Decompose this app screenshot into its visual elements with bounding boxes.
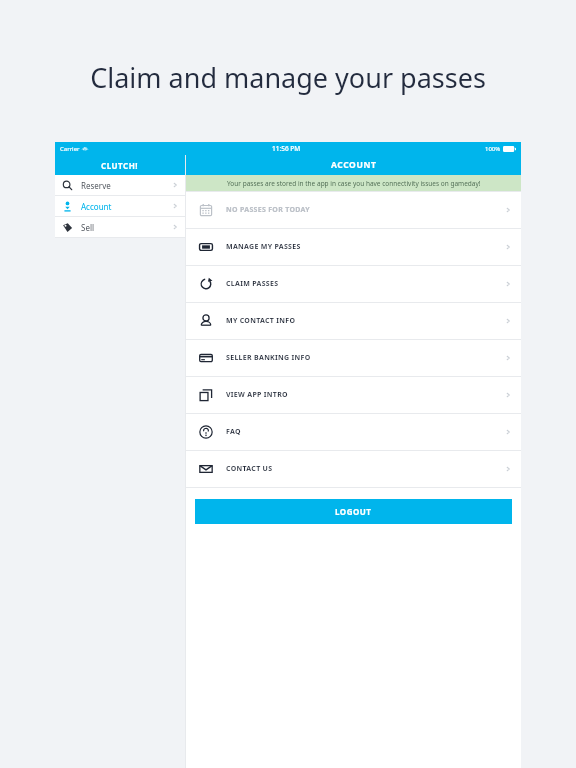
staticText: VIEW APP INTRO [226,390,288,400]
staticText: LOGOUT [335,506,372,517]
button[interactable]: FAQ [186,414,521,450]
staticText: Carrier [60,145,80,153]
other: Open [504,354,512,362]
other: Open [171,202,179,210]
staticText: FAQ [226,427,241,437]
other: Open [504,465,512,473]
other: Open [171,181,179,189]
button[interactable]: CLUTCH! [55,155,185,175]
staticText: SELLER BANKING INFO [226,353,311,363]
button[interactable]: VIEW APP INTRO [186,377,521,413]
other: Open [504,391,512,399]
staticText: Sell [81,222,95,233]
other: Open [504,317,512,325]
staticText: ACCOUNT [331,159,377,171]
button[interactable]: LOGOUT [195,499,512,524]
staticText: NO PASSES FOR TODAY [226,205,310,215]
button[interactable]: CONTACT US [186,451,521,487]
button[interactable]: Account [55,196,185,216]
staticText: 100% [485,145,501,153]
button[interactable]: MANAGE MY PASSES [186,229,521,265]
button[interactable]: CLAIM PASSES [186,266,521,302]
staticText: Claim and manage your passes [0,59,576,96]
other: Open [504,243,512,251]
other: Open [171,223,179,231]
button[interactable]: Sell [55,217,185,237]
button[interactable]: NO PASSES FOR TODAY [186,192,521,228]
other: Open [504,280,512,288]
staticText: CONTACT US [226,464,273,474]
other: Open [504,206,512,214]
staticText: Reserve [81,180,111,191]
staticText: MANAGE MY PASSES [226,242,301,252]
staticText: CLAIM PASSES [226,279,279,289]
staticText: CLUTCH! [101,160,139,171]
other: Open [504,428,512,436]
staticText: 11:56 PM [272,144,301,153]
staticText: Your passes are stored in the app in cas… [227,179,481,188]
button[interactable]: Reserve [55,175,185,195]
staticText: Account [81,201,112,212]
button[interactable]: MY CONTACT INFO [186,303,521,339]
staticText: MY CONTACT INFO [226,316,296,326]
button[interactable]: SELLER BANKING INFO [186,340,521,376]
